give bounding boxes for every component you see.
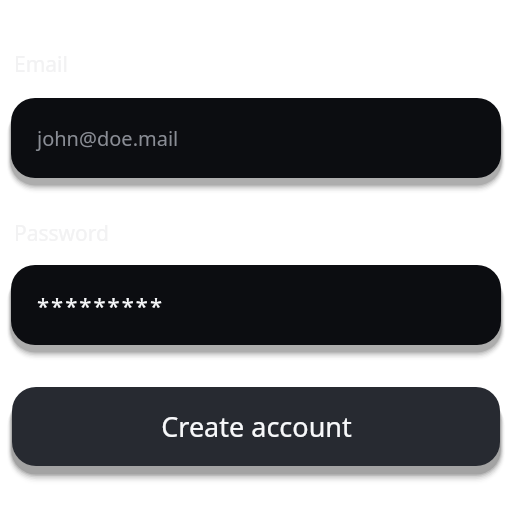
button[interactable]: Create account [12, 387, 500, 466]
staticText: Create account [161, 408, 352, 445]
staticText: Password [14, 219, 109, 248]
staticText: ********* [37, 290, 165, 320]
staticText: john@doe.mail [37, 125, 179, 152]
button[interactable]: Password input [11, 265, 501, 345]
staticText: Email [14, 50, 68, 79]
button[interactable]: Email address input [11, 98, 501, 178]
